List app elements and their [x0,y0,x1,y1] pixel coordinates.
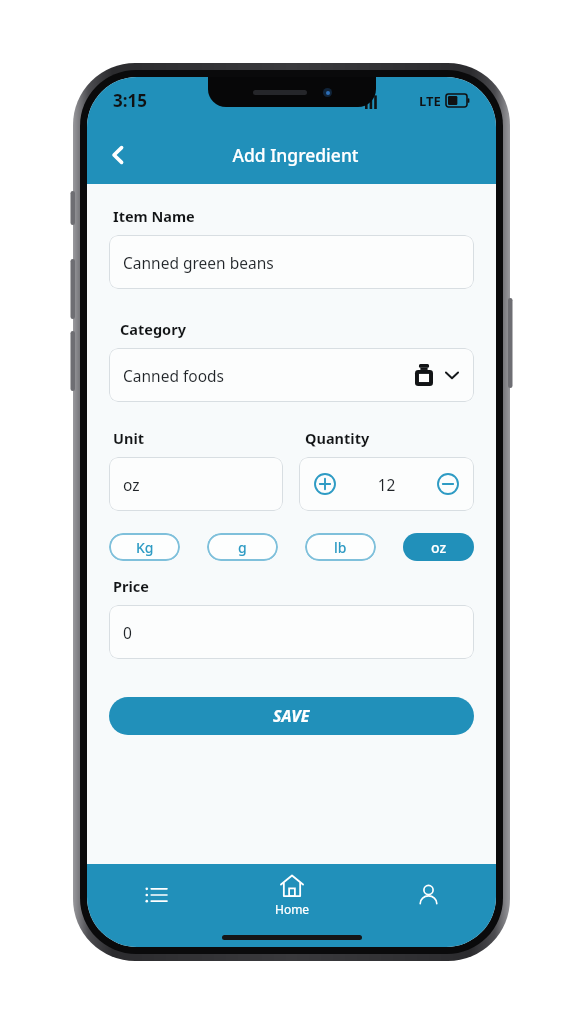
button[interactable]: Kg [109,533,180,561]
staticText: 0 [123,622,132,643]
button[interactable]: SAVE [109,697,474,735]
staticText: SAVE [273,705,310,727]
button[interactable]: Increase quantity [299,457,474,511]
staticText: g [238,538,247,557]
button[interactable]: Increase quantity [311,470,339,498]
button[interactable]: oz [403,533,474,561]
staticText: Item Name [113,206,195,226]
staticText: oz [431,538,447,557]
staticText: oz [123,474,140,495]
staticText: Kg [136,538,154,557]
button[interactable]: 0 [109,605,474,659]
button[interactable]: oz [109,457,283,511]
staticText: Add Ingredient [141,143,450,167]
staticText: lb [334,538,347,557]
button[interactable]: List [87,864,224,926]
button[interactable]: Decrease quantity [434,470,462,498]
button[interactable]: Canned foods [109,348,474,402]
staticText: Canned green beans [123,252,274,273]
button[interactable]: g [207,533,278,561]
staticText: LTE [419,92,441,110]
button[interactable]: Profile [360,864,496,926]
staticText: Unit [113,428,145,448]
button[interactable]: lb [305,533,376,561]
button[interactable]: Canned green beans [109,235,474,289]
button[interactable]: Back [95,132,141,178]
staticText: Price [113,576,149,596]
staticText: 12 [339,474,434,495]
staticText: Home [275,901,310,917]
button[interactable]: Home [224,864,360,926]
staticText: Canned foods [123,365,224,386]
staticText: Category [120,319,186,339]
staticText: 3:15 [113,89,147,112]
staticText: Quantity [305,428,370,448]
